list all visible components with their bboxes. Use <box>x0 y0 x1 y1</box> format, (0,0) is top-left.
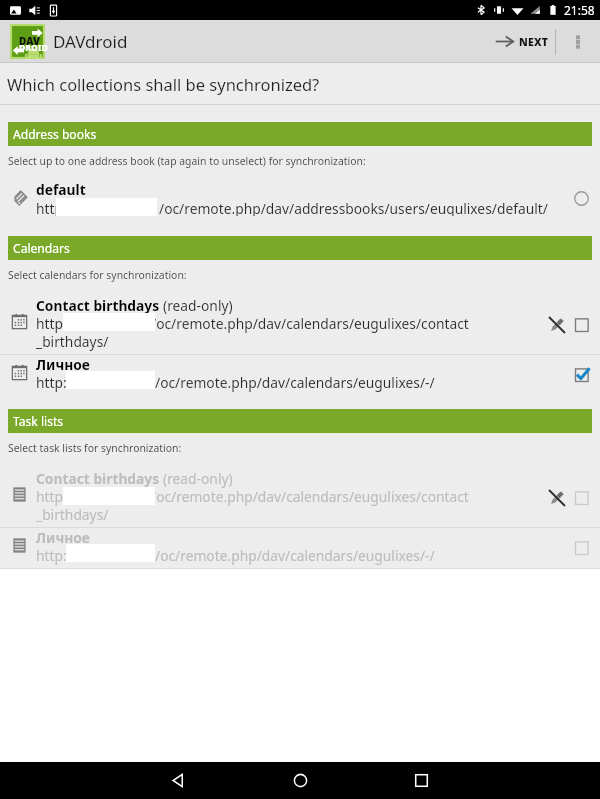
staticText: Address books <box>13 126 97 142</box>
button[interactable]: NEXT <box>488 23 555 60</box>
staticText: http: <box>36 373 67 392</box>
staticText: (read-only) <box>163 296 233 315</box>
staticText: http: <box>36 546 67 565</box>
button[interactable]: Contact birthdays <box>0 296 600 354</box>
staticText: http <box>36 314 63 333</box>
staticText: http <box>36 487 63 506</box>
staticText: Calendars <box>13 240 70 256</box>
staticText: Select calendars for synchronization: <box>8 268 187 282</box>
staticText: http <box>36 199 63 216</box>
button[interactable]: Back <box>160 762 197 799</box>
button[interactable]: Contact birthdays <box>0 469 600 527</box>
staticText: Which collections shall be synchronized? <box>7 73 320 95</box>
button[interactable]: Личное <box>0 528 600 568</box>
staticText: (read-only) <box>163 469 233 488</box>
staticText: Личное <box>36 355 90 374</box>
staticText: Task lists <box>13 413 64 429</box>
staticText: 21:58 <box>564 2 595 18</box>
staticText: Contact birthdays <box>36 469 163 488</box>
button[interactable]: Recent apps <box>403 762 440 799</box>
staticText: Select task lists for synchronization: <box>8 441 182 455</box>
staticText: /oc/remote.php/dav/calendars/eugulixes/c… <box>151 314 469 333</box>
staticText: NEXT <box>519 35 549 49</box>
staticText: Select up to one address book (tap again… <box>8 154 366 168</box>
staticText: DROID <box>19 42 48 54</box>
button[interactable]: default <box>0 180 600 216</box>
staticText: Личное <box>36 528 90 547</box>
staticText: DAVdroid <box>53 30 128 53</box>
staticText: _birthdays/ <box>36 505 109 524</box>
staticText: /oc/remote.php/dav/calendars/eugulixes/c… <box>151 487 469 506</box>
staticText: default <box>36 180 86 199</box>
staticText: _birthdays/ <box>36 332 109 351</box>
button[interactable]: Home <box>282 762 319 799</box>
button[interactable]: More options <box>556 20 600 63</box>
staticText: /oc/remote.php/dav/calendars/eugulixes/-… <box>155 373 435 392</box>
staticText: /oc/remote.php/dav/calendars/eugulixes/-… <box>155 546 435 565</box>
staticText: /oc/remote.php/dav/addressbooks/users/eu… <box>159 199 548 216</box>
staticText: Contact birthdays <box>36 296 163 315</box>
button[interactable]: Личное <box>0 355 600 395</box>
staticText: DAV <box>19 34 40 48</box>
